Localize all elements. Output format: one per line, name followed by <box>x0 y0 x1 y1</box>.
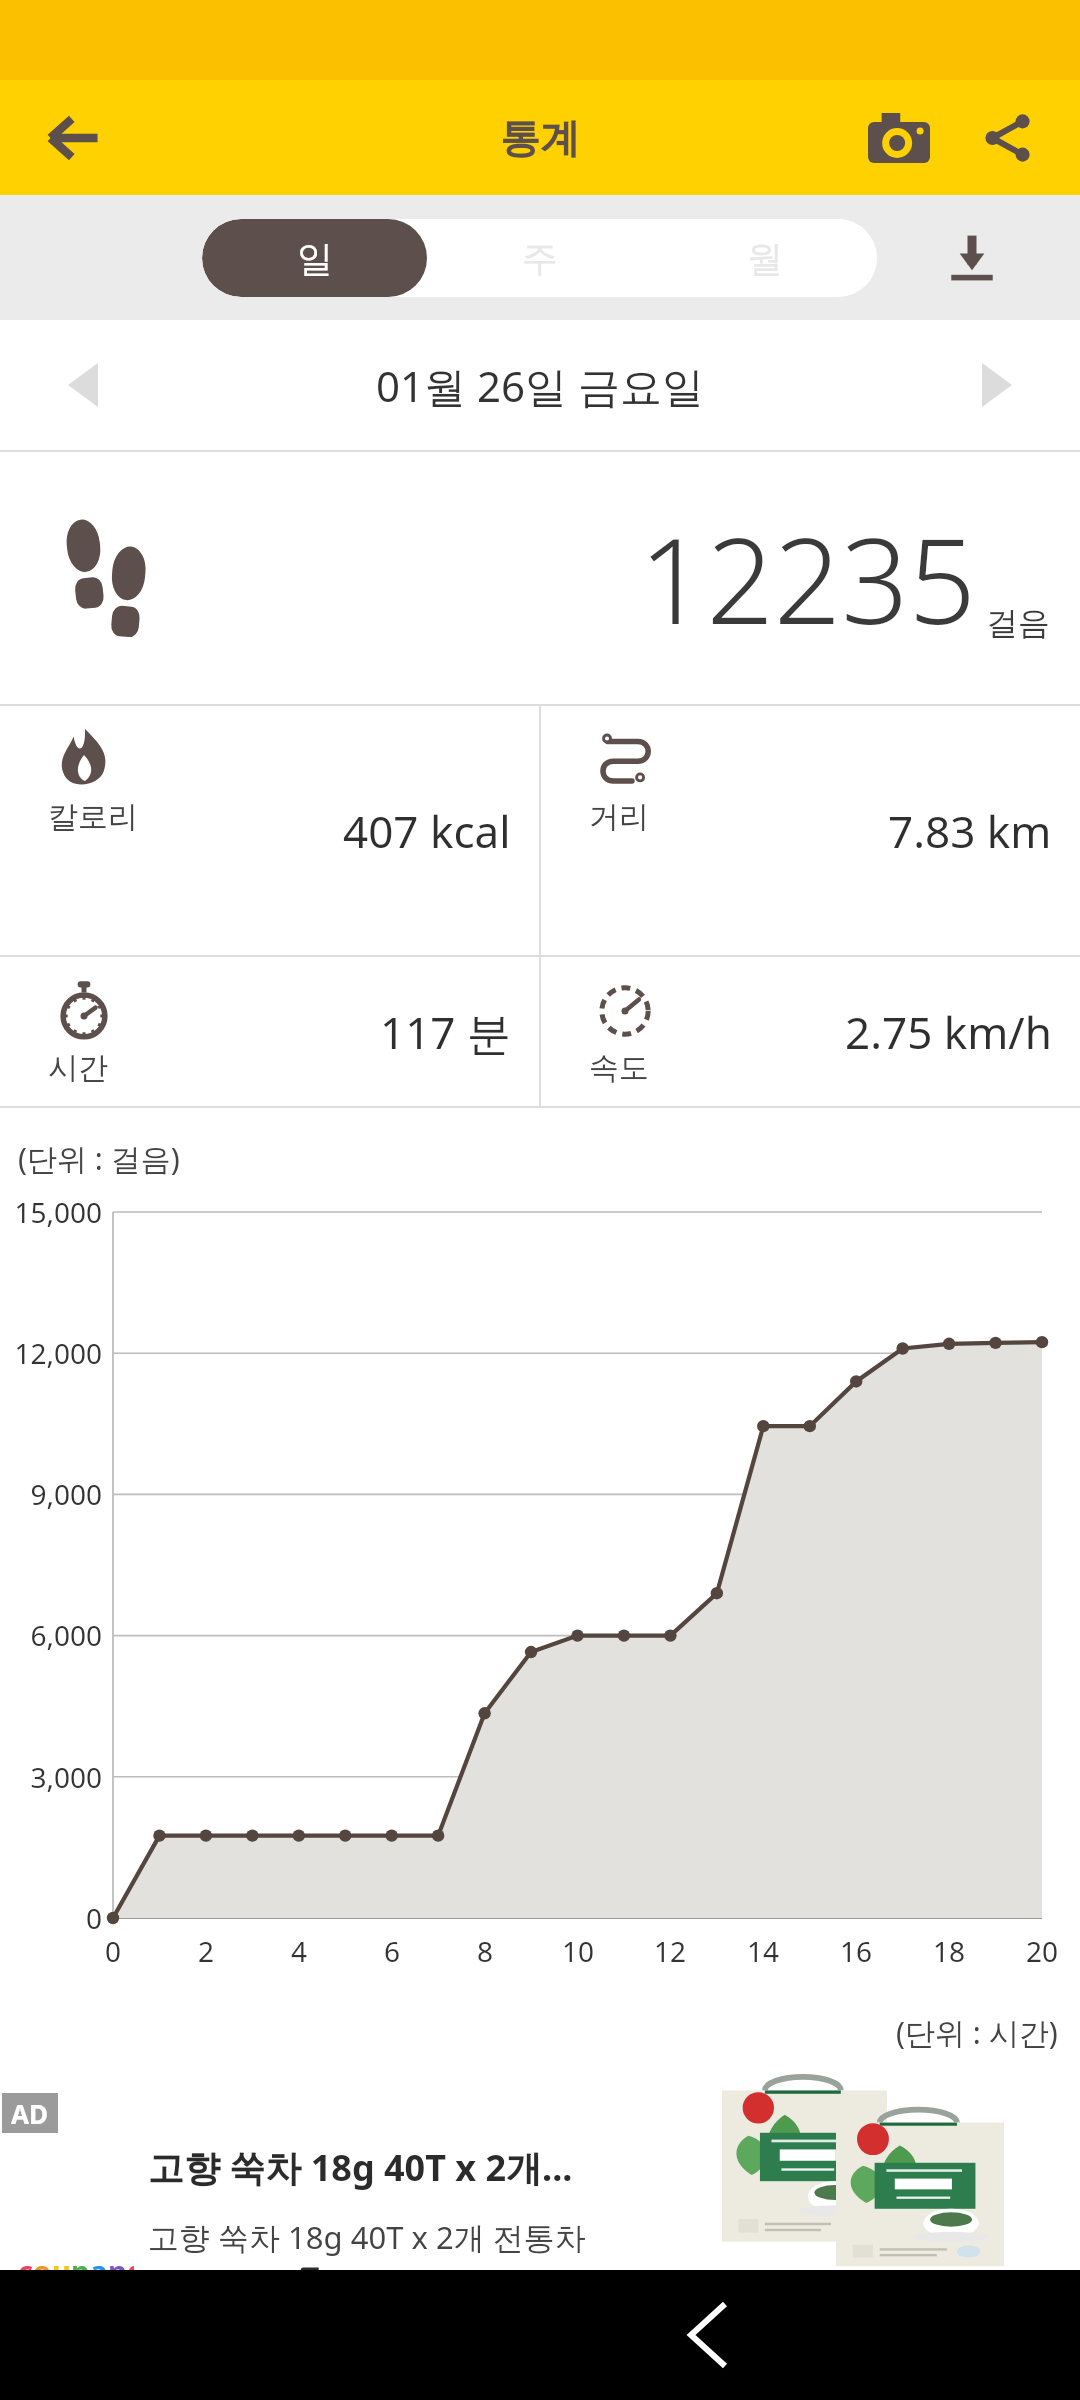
staticText: 9,000 <box>2 1475 102 1513</box>
staticText: 15,000 <box>2 1193 102 1231</box>
staticText: 0 <box>2 1899 102 1937</box>
button[interactable]: AD <box>0 2063 1080 2270</box>
staticText: 칼로리 <box>48 798 138 836</box>
staticText: p <box>71 2251 90 2270</box>
button[interactable]: Previous day <box>40 342 126 428</box>
staticText: 20 <box>1012 1932 1072 1970</box>
staticText: 6,000 <box>2 1616 102 1654</box>
staticText: AD <box>11 2096 49 2131</box>
staticText: 시간 <box>48 1049 108 1087</box>
staticText: 0 <box>83 1932 143 1970</box>
staticText: u <box>52 2251 71 2270</box>
staticText: 주 <box>522 236 558 281</box>
staticText: 4 <box>269 1932 329 1970</box>
staticText: 통계 <box>500 113 580 163</box>
staticText: 14 <box>733 1932 793 1970</box>
staticText: 6 <box>362 1932 422 1970</box>
button[interactable]: Camera <box>860 99 938 177</box>
staticText: 18 <box>919 1932 979 1970</box>
staticText: 고향 쑥차 18g 40T x 2개 전통차 <box>148 2216 586 2258</box>
staticText: 2.75 km/h <box>845 1002 1052 1062</box>
button[interactable]: 속도 <box>541 957 1080 1106</box>
button[interactable]: Download <box>928 214 1016 302</box>
staticText: 12 <box>640 1932 700 1970</box>
staticText: 속도 <box>589 1049 649 1087</box>
button[interactable]: Back <box>38 102 110 174</box>
staticText: 7.83 km <box>888 801 1052 861</box>
staticText: 12,000 <box>2 1334 102 1372</box>
button[interactable]: 일 <box>202 219 427 297</box>
staticText: (단위 : 시간) <box>896 2012 1058 2053</box>
staticText: 월 <box>747 236 783 281</box>
staticText: 8 <box>455 1932 515 1970</box>
staticText: (단위 : 걸음) <box>18 1138 180 1179</box>
staticText: c <box>18 2251 33 2270</box>
staticText: 3,000 <box>2 1758 102 1796</box>
staticText: 2 <box>176 1932 236 1970</box>
staticText: 407 kcal <box>343 801 511 861</box>
staticText: 거리 <box>589 798 649 836</box>
staticText: 일 <box>297 236 333 281</box>
staticText: a <box>90 2251 108 2270</box>
staticText: 10 <box>548 1932 608 1970</box>
staticText: 117 분 <box>380 1002 511 1062</box>
staticText: n <box>108 2251 127 2270</box>
button[interactable]: 시간 <box>0 957 539 1106</box>
button[interactable]: 칼로리 <box>0 706 539 955</box>
button[interactable]: 12235 <box>0 452 1080 704</box>
staticText: 01월 26일 금요일 <box>376 357 704 414</box>
staticText: 걸음 <box>986 603 1050 643</box>
button[interactable]: 월 <box>652 219 877 297</box>
staticText: g <box>127 2251 134 2270</box>
staticText: 12235 <box>639 498 976 659</box>
button[interactable]: Share <box>972 103 1042 173</box>
button[interactable]: Next day <box>954 342 1040 428</box>
button[interactable]: 거리 <box>541 706 1080 955</box>
staticText: 고향 쑥차 18g 40T x 2개... <box>148 2143 573 2192</box>
button[interactable]: Back <box>663 2290 753 2380</box>
staticText: o <box>33 2251 52 2270</box>
staticText: 16 <box>826 1932 886 1970</box>
